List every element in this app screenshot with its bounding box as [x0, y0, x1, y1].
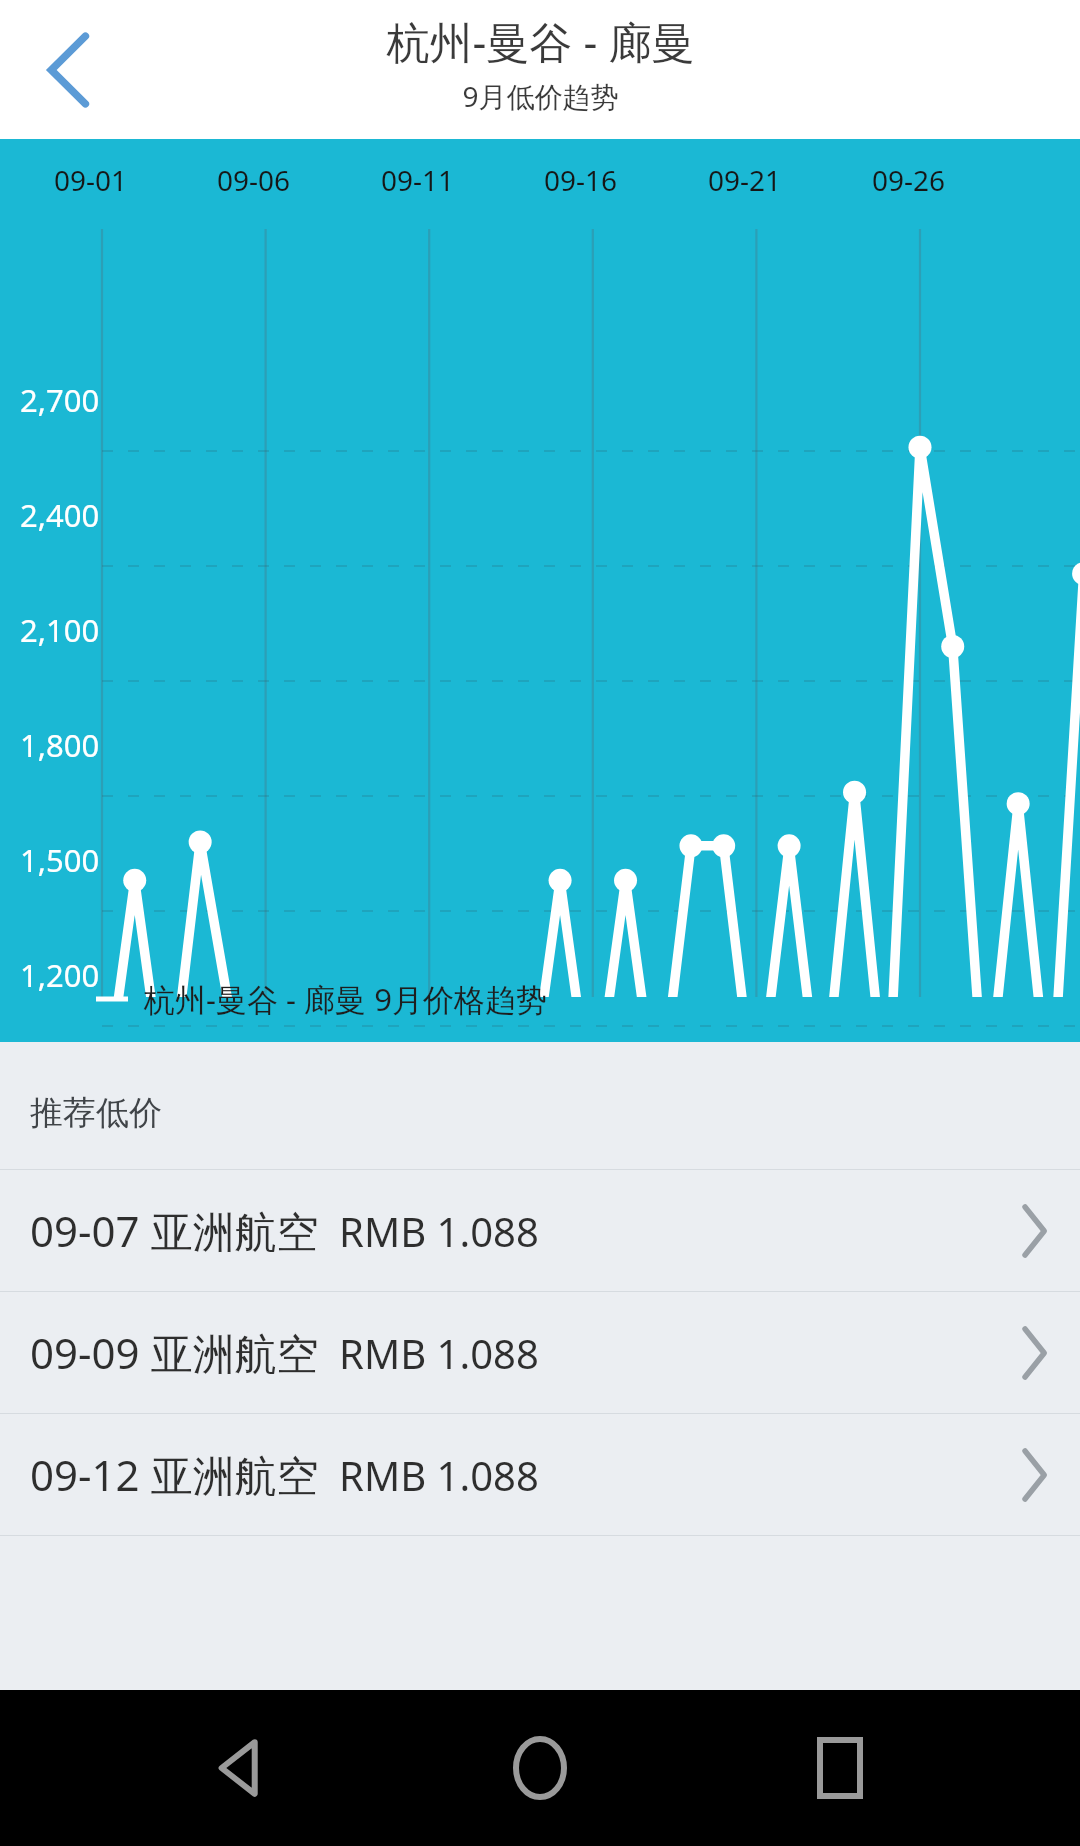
staticText: 09-26	[872, 161, 946, 199]
staticText: 09-01	[54, 161, 128, 199]
button[interactable]: 09-07 亚洲航空	[0, 1170, 1080, 1291]
staticText: 09-06	[217, 161, 291, 199]
staticText: 杭州-曼谷 - 廊曼 9月价格趋势	[144, 978, 547, 1020]
button[interactable]: Back	[10, 5, 126, 135]
button[interactable]: Recents	[780, 1708, 900, 1828]
button[interactable]: Back	[180, 1708, 300, 1828]
button[interactable]: 09-09 亚洲航空	[0, 1292, 1080, 1413]
staticText: 2,700	[20, 379, 100, 421]
staticText: 杭州-曼谷 - 廊曼	[386, 12, 695, 71]
staticText: 1,500	[20, 839, 100, 881]
staticText: 2,100	[20, 609, 100, 651]
staticText: RMB 1.088	[339, 1326, 539, 1380]
staticText: RMB 1.088	[339, 1204, 539, 1258]
staticText: 09-21	[708, 161, 782, 199]
staticText: 09-07 亚洲航空	[30, 1202, 319, 1259]
staticText: 2,400	[20, 494, 100, 536]
staticText: RMB 1.088	[339, 1448, 539, 1502]
staticText: 9月低价趋势	[462, 77, 619, 115]
button[interactable]: 09-12 亚洲航空	[0, 1414, 1080, 1535]
staticText: 09-11	[381, 161, 455, 199]
button[interactable]: Home	[480, 1708, 600, 1828]
staticText: 09-12 亚洲航空	[30, 1446, 319, 1503]
staticText: 1,800	[20, 724, 100, 766]
staticText: 09-09 亚洲航空	[30, 1324, 319, 1381]
staticText: 推荐低价	[30, 1092, 162, 1134]
staticText: 1,200	[20, 954, 100, 996]
staticText: 09-16	[544, 161, 618, 199]
